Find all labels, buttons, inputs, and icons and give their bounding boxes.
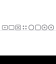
button[interactable] (35, 24, 41, 30)
button[interactable] (2, 24, 8, 30)
button[interactable] (8, 24, 14, 30)
button[interactable] (48, 24, 54, 30)
button[interactable] (28, 24, 34, 30)
button[interactable] (22, 24, 28, 30)
button[interactable] (41, 24, 47, 30)
button[interactable] (15, 24, 21, 30)
